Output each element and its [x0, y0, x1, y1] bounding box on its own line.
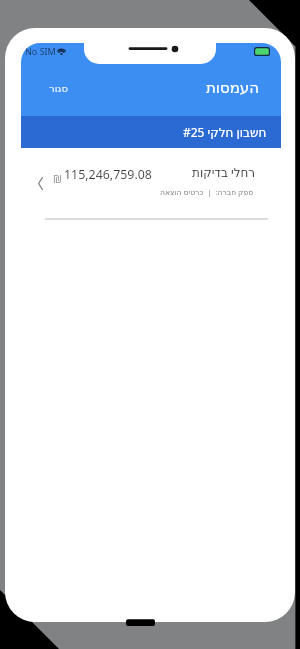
staticText: רחלי בדיקות [192, 164, 256, 180]
button[interactable]: סגור [37, 76, 80, 102]
staticText: העמסות [206, 79, 260, 96]
staticText: סגור [49, 83, 68, 95]
staticText: חשבון חלקי #25 [183, 124, 267, 140]
staticText: ₪ [53, 171, 62, 186]
staticText: 115,246,759.08 [64, 166, 152, 183]
staticText: ספק חברה: | כרטיס הוצאה [160, 187, 254, 197]
staticText: No SIM [25, 45, 56, 57]
button[interactable]: ₪ [21, 148, 281, 221]
